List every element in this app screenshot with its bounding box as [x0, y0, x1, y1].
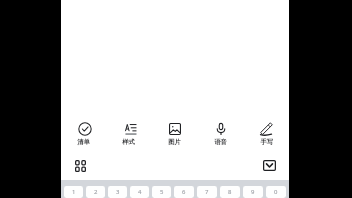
staticText: 2 — [94, 188, 98, 196]
staticText: 7 — [205, 188, 209, 196]
button[interactable]: 3 — [108, 186, 127, 198]
staticText: 手写 — [260, 138, 273, 146]
button[interactable]: 手写 — [243, 118, 289, 148]
staticText: 0 — [274, 188, 278, 196]
button[interactable]: Hide keyboard — [263, 160, 276, 171]
staticText: 6 — [182, 188, 186, 196]
button[interactable]: 清单 — [61, 118, 106, 148]
button[interactable]: More tools — [75, 160, 86, 172]
staticText: 4 — [138, 188, 142, 196]
button[interactable]: 样式 — [106, 118, 151, 148]
button[interactable]: 6 — [174, 186, 194, 198]
button[interactable]: 1 — [64, 186, 83, 198]
staticText: 8 — [228, 188, 232, 196]
staticText: 样式 — [122, 138, 135, 146]
staticText: 语音 — [214, 138, 227, 146]
button[interactable]: 4 — [130, 186, 149, 198]
button[interactable]: 9 — [243, 186, 263, 198]
staticText: 1 — [72, 188, 76, 196]
button[interactable]: 2 — [86, 186, 105, 198]
button[interactable]: 8 — [220, 186, 240, 198]
button[interactable]: 语音 — [197, 118, 243, 148]
staticText: 图片 — [168, 138, 181, 146]
staticText: 5 — [160, 188, 164, 196]
button[interactable]: 0 — [266, 186, 286, 198]
staticText: 9 — [251, 188, 255, 196]
button[interactable]: 图片 — [151, 118, 197, 148]
button[interactable]: 5 — [152, 186, 171, 198]
button[interactable]: 7 — [197, 186, 217, 198]
staticText: 3 — [116, 188, 120, 196]
staticText: 清单 — [77, 138, 90, 146]
